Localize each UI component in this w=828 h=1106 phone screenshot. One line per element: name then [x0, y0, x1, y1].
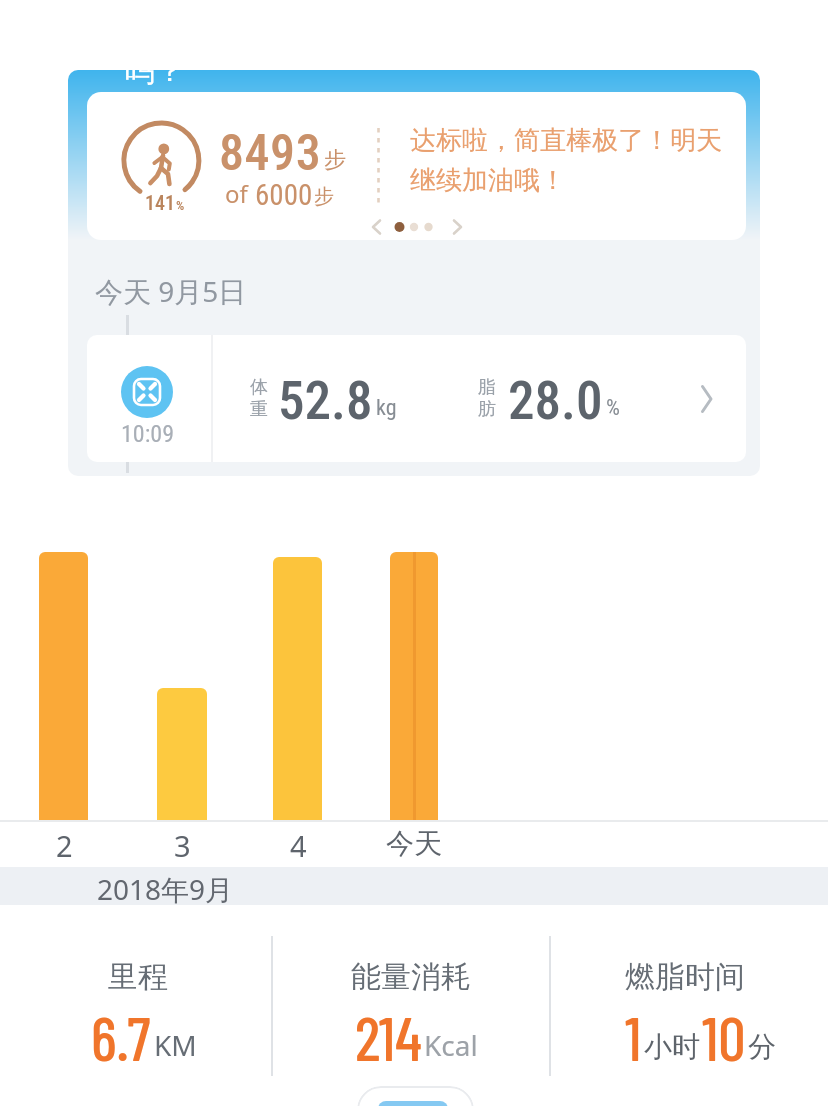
staticText: 214 [355, 1000, 422, 1073]
staticText: 脂 肪 [478, 376, 496, 421]
button[interactable] [367, 218, 467, 236]
staticText: 步 [314, 184, 334, 209]
button[interactable]: 10:09 [87, 335, 746, 462]
staticText: 2018年9月 [97, 870, 234, 908]
staticText: 今天 9月5日 [95, 272, 247, 310]
staticText: 8493 [219, 124, 322, 183]
staticText: 体 重 [250, 376, 268, 421]
staticText: Kcal [424, 1026, 478, 1064]
staticText: KM [154, 1026, 197, 1064]
staticText: 10:09 [121, 420, 174, 448]
button[interactable]: 141 [87, 92, 746, 240]
staticText: 1 [625, 1000, 642, 1073]
staticText: 步 [324, 146, 346, 174]
staticText: 燃脂时间 [625, 958, 745, 996]
staticText: 4 [290, 826, 307, 865]
staticText: 28.0 [508, 370, 603, 432]
staticText: kg [376, 395, 397, 421]
staticText: 吗？ [125, 70, 185, 90]
staticText: 6.7 [91, 1000, 151, 1073]
staticText: of [225, 177, 255, 210]
staticText: % [176, 198, 185, 213]
staticText: 能量消耗 [351, 958, 471, 996]
staticText: 2 [56, 826, 73, 865]
button[interactable] [390, 552, 438, 821]
staticText: 6000 [255, 178, 313, 212]
staticText: 3 [174, 826, 191, 865]
staticText: 141 [145, 191, 176, 214]
staticText: 今天 [386, 826, 442, 861]
staticText: 达标啦，简直棒极了！明天 继续加油哦！ [410, 124, 722, 197]
staticText: 分 [748, 1029, 776, 1064]
button[interactable] [357, 1086, 474, 1106]
staticText: % [606, 395, 620, 421]
staticText: 52.8 [278, 370, 373, 432]
staticText: 10 [702, 1000, 746, 1073]
staticText: 小时 [644, 1029, 700, 1064]
staticText: 里程 [108, 958, 168, 996]
